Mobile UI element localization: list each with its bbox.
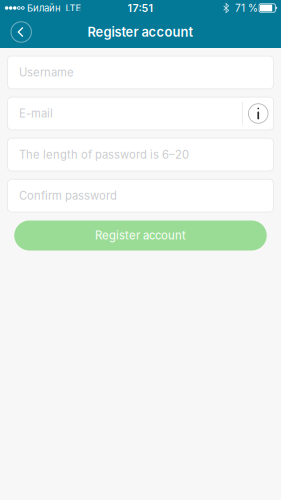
staticText: Register account: [95, 229, 186, 242]
button[interactable]: Information: [243, 97, 273, 130]
button[interactable]: Back: [6, 16, 36, 48]
staticText: 71 %: [235, 2, 258, 14]
staticText: Register account: [87, 24, 193, 40]
staticText: The length of password is 6–20: [19, 148, 189, 161]
staticText: LTE: [65, 2, 81, 14]
staticText: E-mail: [19, 107, 53, 120]
staticText: 17:51: [127, 1, 153, 14]
staticText: Username: [19, 66, 74, 79]
button[interactable]: Register account: [14, 220, 267, 250]
staticText: Билайн: [27, 2, 61, 14]
staticText: Confirm password: [19, 189, 117, 202]
